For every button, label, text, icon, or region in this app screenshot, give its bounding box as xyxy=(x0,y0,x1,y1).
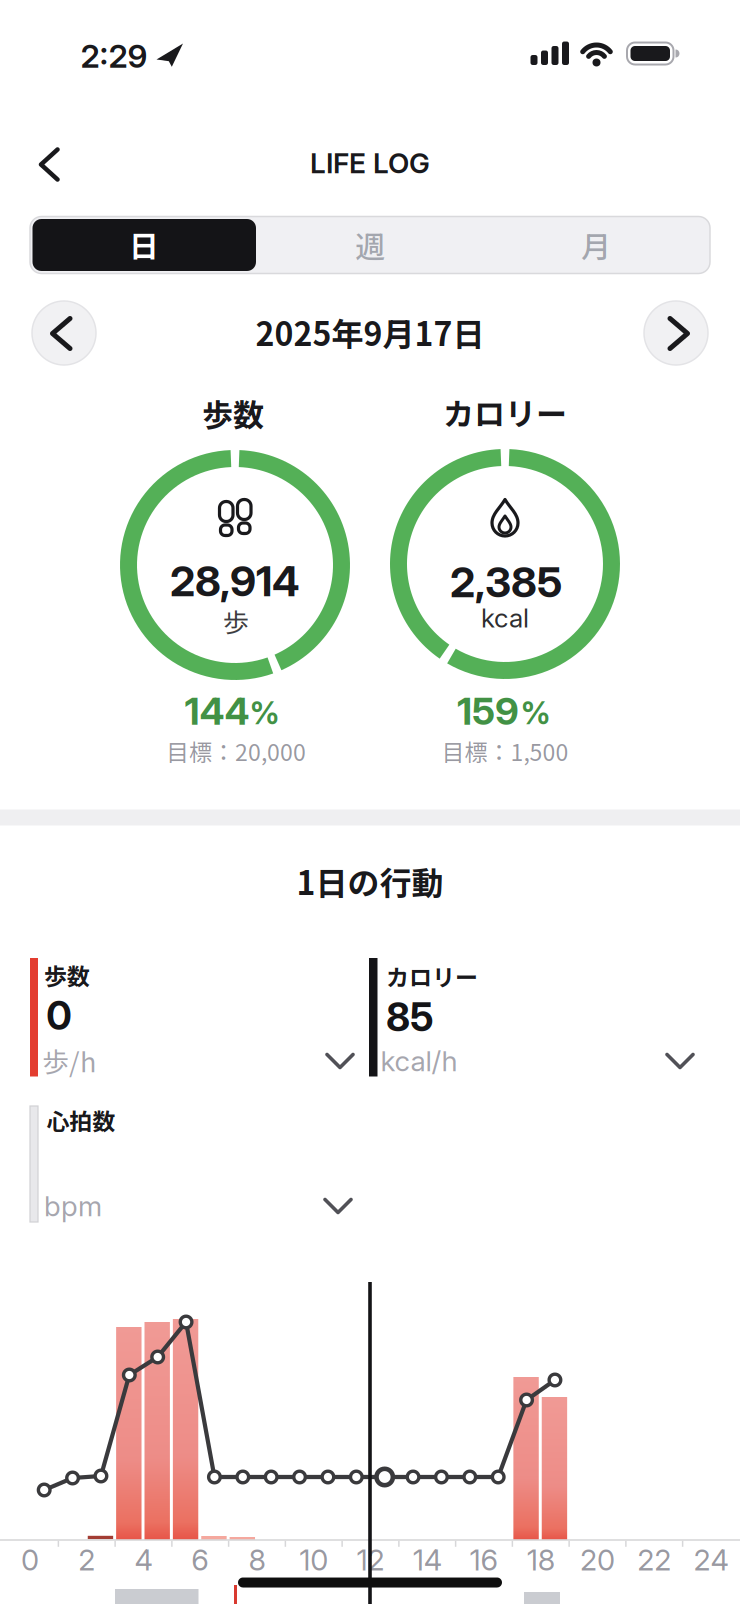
button[interactable]: 月 xyxy=(483,219,709,271)
staticText: 144 xyxy=(184,688,249,734)
staticText: 18 xyxy=(527,1542,555,1578)
staticText: 月 xyxy=(581,223,611,267)
staticText: 日 xyxy=(129,223,159,266)
staticText: 心拍数 xyxy=(46,1103,115,1137)
button[interactable]: Change steps unit xyxy=(318,1041,362,1081)
staticText: kcal xyxy=(481,602,529,634)
button[interactable]: Previous day xyxy=(32,301,96,365)
staticText: 歩数 xyxy=(44,958,90,992)
staticText: 16 xyxy=(469,1542,498,1578)
button[interactable]: 週 xyxy=(257,219,483,271)
staticText: 2025年9月17日 xyxy=(255,309,484,355)
staticText: 2,385 xyxy=(450,557,562,607)
staticText: 0 xyxy=(46,992,71,1039)
staticText: 目標：1,500 xyxy=(441,734,568,768)
staticText: 1日の行動 xyxy=(296,858,443,904)
staticText: 28,914 xyxy=(170,556,300,606)
staticText: 159 xyxy=(457,688,519,734)
staticText: 6 xyxy=(191,1542,209,1578)
button[interactable]: Next day xyxy=(644,301,708,365)
staticText: 週 xyxy=(355,223,385,267)
staticText: 2:29 xyxy=(80,37,147,75)
button[interactable]: Back xyxy=(27,142,81,187)
staticText: bpm xyxy=(44,1189,102,1223)
staticText: 22 xyxy=(637,1542,671,1578)
staticText: 8 xyxy=(248,1542,265,1578)
staticText: 14 xyxy=(413,1542,442,1578)
staticText: 4 xyxy=(134,1542,152,1578)
staticText: LIFE LOG xyxy=(310,146,430,180)
staticText: 2 xyxy=(78,1542,95,1578)
staticText: カロリー xyxy=(386,959,478,993)
staticText: 24 xyxy=(693,1542,728,1578)
button[interactable]: 日 xyxy=(32,219,256,271)
staticText: % xyxy=(249,694,279,732)
staticText: 歩数 xyxy=(202,391,264,435)
staticText: 歩/h xyxy=(42,1041,96,1080)
staticText: 85 xyxy=(386,993,434,1041)
button[interactable]: Change heart rate unit xyxy=(316,1186,360,1226)
staticText: カロリー xyxy=(443,390,567,434)
staticText: 12 xyxy=(356,1542,384,1578)
staticText: 10 xyxy=(299,1542,328,1578)
staticText: 歩 xyxy=(223,602,249,640)
staticText: 0 xyxy=(21,1542,39,1578)
staticText: % xyxy=(520,694,550,732)
staticText: 目標：20,000 xyxy=(166,734,306,768)
staticText: 20 xyxy=(580,1542,615,1578)
button[interactable]: Change calories unit xyxy=(658,1041,702,1081)
staticText: kcal/h xyxy=(380,1044,457,1078)
